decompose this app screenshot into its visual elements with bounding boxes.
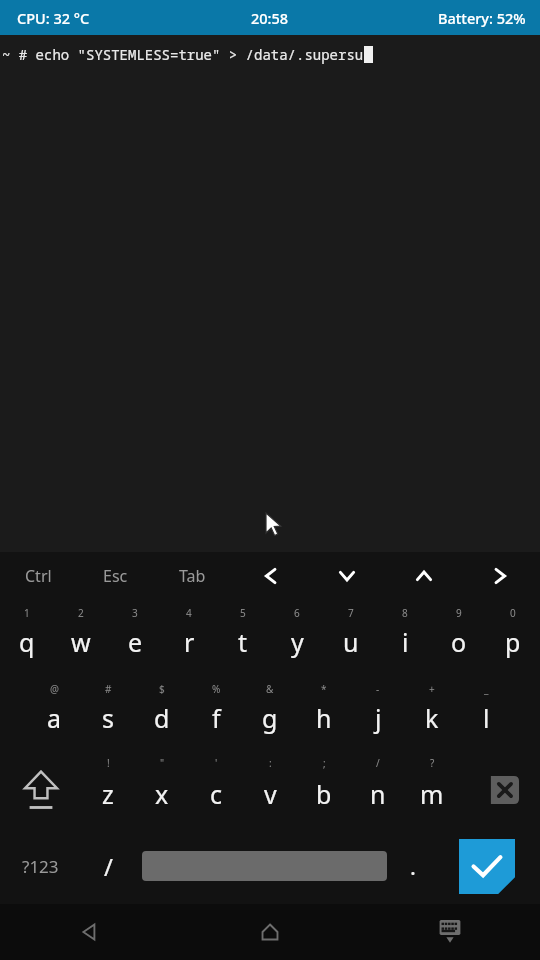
staticText: x (155, 777, 169, 811)
staticText: t (238, 625, 248, 659)
staticText: 20:58 (251, 8, 289, 28)
button[interactable]: / (81, 828, 135, 904)
button[interactable]: Home (180, 904, 360, 960)
staticText: ~ # echo "SYSTEMLESS=true" > /data/.supe… (2, 45, 364, 64)
button[interactable]: & (243, 676, 297, 752)
staticText: d (154, 701, 170, 735)
staticText: p (505, 625, 521, 659)
staticText: r (184, 625, 195, 659)
staticText: 4 (186, 606, 192, 620)
staticText: 5 (240, 606, 246, 620)
button[interactable]: @ (27, 676, 81, 752)
button[interactable]: ; (297, 752, 351, 828)
button[interactable]: 4 (162, 600, 216, 676)
button[interactable]: - (351, 676, 405, 752)
staticText: w (71, 625, 91, 659)
staticText: 2 (78, 606, 84, 620)
button[interactable]: + (405, 676, 459, 752)
button[interactable]: Tab (154, 552, 231, 600)
staticText: 8 (402, 606, 408, 620)
staticText: # (105, 682, 112, 696)
staticText: + (429, 682, 435, 696)
staticText: j (375, 701, 382, 735)
button[interactable]: 3 (108, 600, 162, 676)
button[interactable]: ' (189, 752, 243, 828)
button[interactable]: ? (405, 752, 459, 828)
staticText: - (376, 682, 380, 696)
staticText: z (102, 777, 114, 811)
staticText: 1 (24, 606, 30, 620)
staticText: Esc (103, 565, 128, 587)
button[interactable]: 6 (270, 600, 324, 676)
staticText: % (212, 682, 221, 696)
button[interactable]: . (393, 828, 433, 904)
button[interactable]: 5 (216, 600, 270, 676)
staticText: e (128, 625, 143, 659)
button[interactable]: $ (135, 676, 189, 752)
staticText: 6 (294, 606, 300, 620)
staticText: l (483, 701, 490, 735)
staticText: g (262, 701, 278, 735)
staticText: 3 (132, 606, 138, 620)
button[interactable]: up (385, 552, 462, 600)
staticText: " (160, 756, 165, 770)
button[interactable]: / (351, 752, 405, 828)
staticText: ' (215, 756, 218, 770)
button[interactable]: % (189, 676, 243, 752)
staticText: : (269, 756, 272, 770)
staticText: Ctrl (25, 565, 52, 587)
staticText: n (370, 777, 386, 811)
button[interactable]: ?123 (0, 828, 81, 904)
button[interactable]: 0 (486, 600, 540, 676)
staticText: i (402, 625, 409, 659)
staticText: s (102, 701, 114, 735)
staticText: Tab (179, 565, 206, 587)
staticText: CPU: 32 °C (17, 8, 90, 28)
staticText: * (321, 682, 327, 696)
staticText: / (376, 756, 380, 770)
staticText: ! (107, 756, 110, 770)
staticText: ?123 (22, 855, 59, 878)
button[interactable]: 7 (324, 600, 378, 676)
staticText: y (291, 625, 304, 659)
staticText: a (47, 701, 62, 735)
button[interactable]: right (462, 552, 539, 600)
staticText: f (212, 701, 221, 735)
button[interactable]: Backspace (459, 752, 540, 828)
button[interactable]: Back (0, 904, 180, 960)
staticText: q (19, 625, 35, 659)
staticText: / (104, 850, 113, 883)
staticText: @ (50, 682, 59, 696)
staticText: k (425, 701, 439, 735)
button[interactable]: ! (81, 752, 135, 828)
button[interactable]: Hide keyboard (360, 904, 540, 960)
button[interactable]: left (231, 552, 308, 600)
button[interactable]: * (297, 676, 351, 752)
button[interactable]: Esc (77, 552, 154, 600)
button[interactable]: 2 (54, 600, 108, 676)
staticText: $ (159, 682, 165, 696)
button[interactable]: # (81, 676, 135, 752)
staticText: & (266, 682, 274, 696)
staticText: Battery: 52% (438, 8, 526, 28)
button[interactable]: 1 (0, 600, 54, 676)
staticText: _ (484, 682, 489, 696)
button[interactable]: 9 (432, 600, 486, 676)
button[interactable]: _ (459, 676, 513, 752)
staticText: b (316, 777, 332, 811)
staticText: . (410, 851, 416, 881)
button[interactable]: 8 (378, 600, 432, 676)
staticText: ? (430, 756, 435, 770)
staticText: h (316, 701, 332, 735)
button[interactable]: : (243, 752, 297, 828)
button[interactable]: " (135, 752, 189, 828)
button[interactable]: Ctrl (0, 552, 77, 600)
staticText: m (420, 777, 444, 811)
staticText: c (210, 777, 223, 811)
staticText: v (264, 777, 277, 811)
button[interactable]: down (308, 552, 385, 600)
button[interactable]: Enter (459, 839, 515, 894)
button[interactable]: Shift (0, 752, 81, 828)
staticText: 0 (510, 606, 516, 620)
